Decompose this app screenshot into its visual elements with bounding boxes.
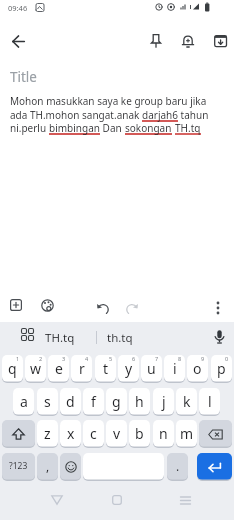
staticText: 7: [155, 355, 159, 362]
button[interactable]: y: [118, 355, 139, 383]
button[interactable]: a: [13, 388, 34, 416]
staticText: ni.perlu: [10, 121, 49, 135]
staticText: q: [8, 359, 17, 378]
button[interactable]: [120, 296, 144, 320]
staticText: sokongan: [125, 121, 172, 135]
staticText: f: [91, 392, 96, 411]
button[interactable]: n: [153, 420, 174, 448]
button[interactable]: g: [106, 388, 127, 416]
staticText: a: [20, 392, 28, 411]
button[interactable]: [15, 322, 39, 346]
button[interactable]: c: [83, 420, 104, 448]
staticText: TH.tq: [45, 330, 75, 346]
button[interactable]: v: [106, 420, 127, 448]
staticText: Mohon masukkan saya ke group baru jika: [10, 94, 207, 108]
staticText: [172, 121, 175, 135]
staticText: y: [125, 359, 133, 378]
button[interactable]: [142, 27, 168, 53]
staticText: tahun: [178, 108, 209, 122]
button[interactable]: h: [129, 388, 150, 416]
staticText: z: [44, 424, 51, 443]
staticText: th.tq: [107, 330, 133, 346]
button[interactable]: [199, 420, 232, 448]
staticText: u: [147, 359, 156, 378]
staticText: 6: [132, 355, 136, 362]
button[interactable]: th.tq: [100, 326, 140, 350]
staticText: 0: [225, 355, 229, 362]
button[interactable]: m: [176, 420, 197, 448]
button[interactable]: b: [129, 420, 150, 448]
staticText: v: [113, 424, 121, 443]
button[interactable]: l: [199, 388, 220, 416]
button[interactable]: f: [83, 388, 104, 416]
staticText: TH.tq: [175, 121, 201, 135]
button[interactable]: [172, 490, 198, 510]
button[interactable]: [4, 293, 28, 317]
staticText: ?123: [9, 460, 28, 472]
button[interactable]: [197, 453, 232, 481]
staticText: 2: [39, 355, 43, 362]
button[interactable]: u: [141, 355, 162, 383]
staticText: h: [135, 392, 144, 411]
staticText: n: [159, 424, 168, 443]
staticText: Dan: [100, 121, 125, 135]
button[interactable]: [2, 420, 35, 448]
staticText: r: [79, 359, 85, 378]
button[interactable]: d: [60, 388, 81, 416]
button[interactable]: [44, 490, 70, 510]
staticText: j: [162, 392, 166, 411]
button[interactable]: ?123: [2, 453, 35, 481]
staticText: bimbingan: [49, 121, 100, 135]
staticText: 09:46: [8, 3, 28, 13]
button[interactable]: k: [176, 388, 197, 416]
staticText: p: [217, 359, 226, 378]
button[interactable]: [104, 490, 130, 510]
staticText: 9: [201, 355, 205, 362]
button[interactable]: [35, 293, 59, 317]
staticText: m: [180, 424, 194, 443]
staticText: 4: [85, 355, 89, 362]
staticText: b: [135, 424, 144, 443]
staticText: l: [208, 392, 212, 411]
button[interactable]: [5, 28, 31, 54]
staticText: .: [176, 458, 180, 474]
button[interactable]: p: [211, 355, 232, 383]
button[interactable]: .: [167, 453, 188, 481]
button[interactable]: s: [37, 388, 58, 416]
staticText: e: [55, 359, 63, 378]
button[interactable]: [175, 27, 201, 53]
staticText: i: [173, 359, 177, 378]
button[interactable]: [83, 453, 164, 481]
button[interactable]: j: [153, 388, 174, 416]
button[interactable]: [206, 296, 230, 320]
button[interactable]: z: [37, 420, 58, 448]
button[interactable]: x: [60, 420, 81, 448]
button[interactable]: q: [2, 355, 23, 383]
button[interactable]: w: [25, 355, 46, 383]
button[interactable]: o: [187, 355, 208, 383]
button[interactable]: [90, 296, 114, 320]
staticText: k: [183, 392, 191, 411]
staticText: s: [44, 392, 51, 411]
staticText: g: [112, 392, 121, 411]
button[interactable]: [208, 28, 234, 54]
staticText: 3: [62, 355, 66, 362]
button[interactable]: [60, 453, 81, 481]
button[interactable]: e: [48, 355, 69, 383]
staticText: o: [193, 359, 202, 378]
button[interactable]: i: [164, 355, 185, 383]
staticText: w: [30, 359, 42, 378]
button[interactable]: TH.tq: [40, 326, 80, 350]
staticText: 1: [16, 355, 20, 362]
button[interactable]: r: [71, 355, 92, 383]
staticText: x: [67, 424, 75, 443]
staticText: d: [66, 392, 75, 411]
button[interactable]: t: [95, 355, 116, 383]
staticText: t: [103, 359, 109, 378]
staticText: 5: [109, 355, 113, 362]
staticText: c: [90, 424, 97, 443]
staticText: ada TH.mohon sangat.anak: [10, 108, 142, 122]
button[interactable]: ,: [37, 453, 58, 481]
staticText: ,: [46, 458, 50, 474]
button[interactable]: [208, 325, 231, 349]
